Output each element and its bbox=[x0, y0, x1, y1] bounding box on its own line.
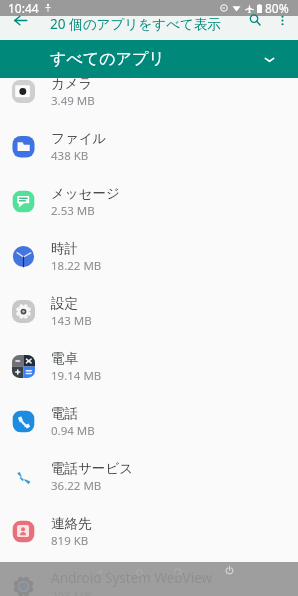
staticText: ファイル bbox=[51, 130, 107, 147]
staticText: 819 KB bbox=[51, 533, 89, 549]
staticText: 電話サービス bbox=[51, 460, 133, 477]
button[interactable]: カメラ bbox=[0, 64, 298, 119]
staticText: 連絡先 bbox=[51, 515, 92, 532]
button[interactable]: 連絡先 bbox=[0, 504, 298, 559]
staticText: 時計 bbox=[51, 240, 78, 257]
staticText: 0.94 MB bbox=[51, 423, 95, 439]
staticText: カメラ bbox=[51, 75, 93, 92]
staticText: メッセージ bbox=[51, 185, 120, 202]
staticText: 設定 bbox=[51, 295, 78, 312]
staticText: 143 MB bbox=[51, 313, 92, 329]
staticText: 36.22 MB bbox=[51, 478, 102, 494]
staticText: 10:44 bbox=[8, 0, 39, 16]
button[interactable]: Search bbox=[243, 8, 267, 32]
button[interactable]: すべてのアプリ bbox=[0, 40, 298, 78]
staticText: 電卓 bbox=[51, 350, 78, 367]
staticText: 18.22 MB bbox=[51, 258, 102, 274]
button[interactable]: 設定 bbox=[0, 284, 298, 339]
staticText: すべてのアプリ bbox=[50, 49, 165, 69]
button[interactable]: 電話 bbox=[0, 394, 298, 449]
button[interactable]: Power bbox=[222, 563, 236, 577]
staticText: 19.14 MB bbox=[51, 368, 102, 384]
button[interactable]: Back bbox=[92, 565, 106, 579]
staticText: 80% bbox=[265, 0, 289, 16]
button[interactable]: Back bbox=[8, 8, 32, 32]
staticText: 20 個のアプリをすべて表示 bbox=[50, 14, 222, 33]
staticText: 3.49 MB bbox=[51, 93, 95, 109]
button[interactable]: ファイル bbox=[0, 119, 298, 174]
button[interactable]: Home bbox=[132, 565, 146, 579]
button[interactable]: Android System WebView bbox=[0, 559, 298, 596]
staticText: 2.53 MB bbox=[51, 203, 95, 219]
button[interactable]: 電卓 bbox=[0, 339, 298, 394]
button[interactable]: 時計 bbox=[0, 229, 298, 284]
staticText: Android System WebView bbox=[51, 569, 213, 587]
button[interactable]: Recents bbox=[171, 565, 185, 579]
staticText: 電話 bbox=[51, 405, 78, 422]
staticText: 438 KB bbox=[51, 148, 89, 164]
button[interactable]: More options bbox=[270, 8, 294, 32]
button[interactable]: メッセージ bbox=[0, 174, 298, 229]
button[interactable]: 電話サービス bbox=[0, 449, 298, 504]
